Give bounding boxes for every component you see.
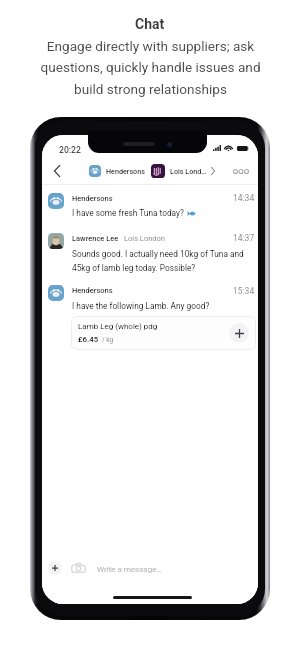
staticText: I have some fresh Tuna today? bbox=[72, 208, 184, 218]
staticText: / kg bbox=[102, 336, 113, 344]
button[interactable]: More options bbox=[222, 159, 258, 183]
button[interactable]: Hendersons bbox=[89, 165, 145, 177]
staticText: Hendersons bbox=[72, 286, 113, 295]
staticText: Chat bbox=[135, 16, 165, 32]
staticText: Engage directly with suppliers; ask ques… bbox=[40, 38, 261, 98]
button[interactable]: Add attachment bbox=[48, 561, 62, 575]
button[interactable]: Camera bbox=[70, 560, 86, 576]
staticText: Lois London bbox=[124, 234, 165, 243]
staticText: £6.45 bbox=[78, 335, 99, 344]
staticText: 15:34 bbox=[233, 286, 255, 296]
staticText: Hendersons bbox=[72, 194, 113, 203]
button[interactable]: Lois Lond… bbox=[151, 164, 215, 178]
staticText: Write a message… bbox=[97, 565, 162, 574]
staticText: 14:37 bbox=[233, 233, 255, 243]
button[interactable]: Write a message… bbox=[90, 557, 250, 579]
staticText: 14:34 bbox=[233, 193, 255, 203]
staticText: Lawrence Lee bbox=[72, 234, 119, 243]
staticText: Lamb Leg (whole) pdg bbox=[78, 322, 158, 331]
button[interactable]: Back bbox=[45, 159, 69, 183]
button[interactable]: Lamb Leg (whole) pdg bbox=[71, 316, 256, 350]
staticText: Sounds good. I actually need 10kg of Tun… bbox=[72, 249, 244, 273]
button[interactable]: Add item bbox=[229, 323, 249, 343]
staticText: I have the following Lamb. Any good? bbox=[72, 301, 210, 311]
staticText: 20:22 bbox=[59, 145, 81, 155]
staticText: Hendersons bbox=[106, 167, 145, 175]
staticText: Lois Lond… bbox=[170, 167, 207, 175]
